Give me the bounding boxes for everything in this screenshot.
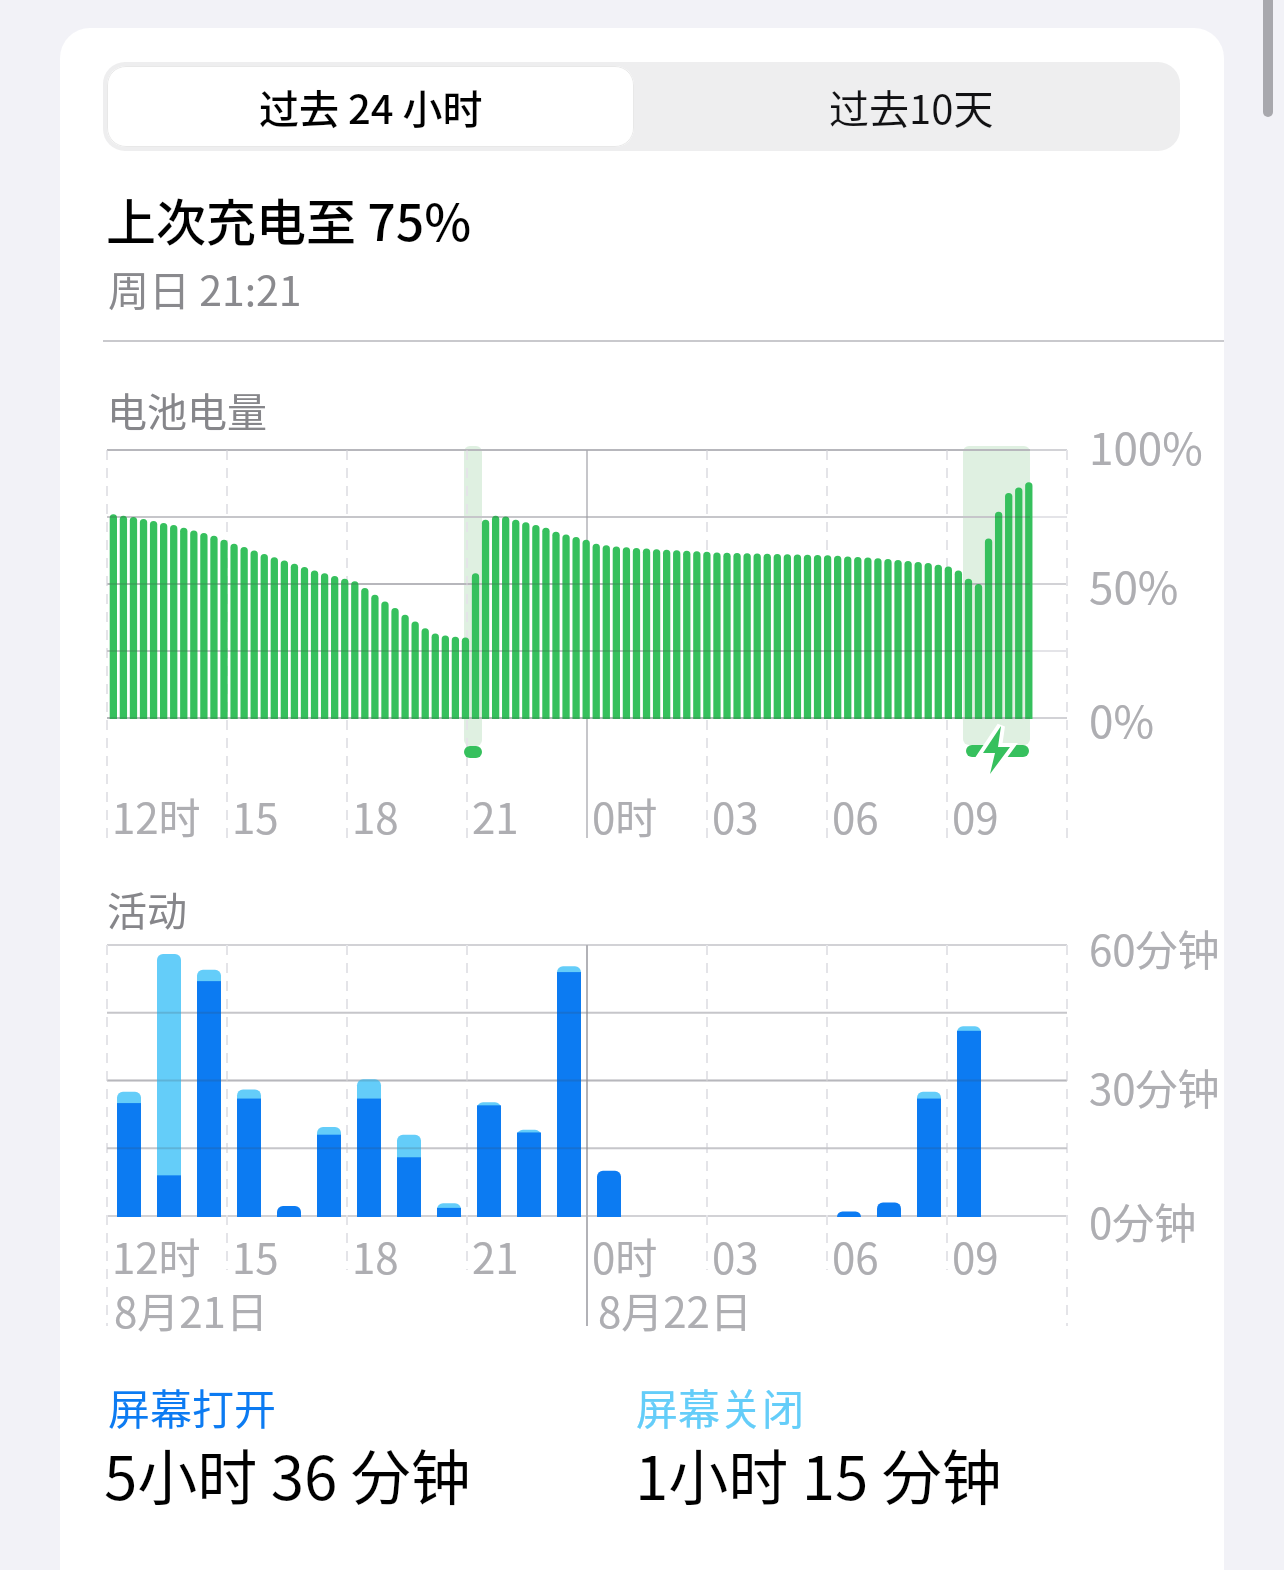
- staticText: 0%: [1089, 687, 1154, 751]
- staticText: 09: [952, 1225, 999, 1286]
- staticText: 21: [472, 785, 519, 846]
- staticText: 03: [712, 1225, 759, 1286]
- staticText: 电池电量: [107, 381, 267, 439]
- button[interactable]: 过去10天: [642, 62, 1180, 151]
- staticText: 8月22日: [598, 1279, 752, 1340]
- staticText: 0时: [592, 1225, 658, 1286]
- staticText: 06: [832, 1225, 879, 1286]
- staticText: 12时: [112, 785, 201, 846]
- staticText: 上次充电至 75%: [106, 183, 472, 255]
- staticText: 12时: [112, 1225, 201, 1286]
- staticText: 1小时 15 分钟: [635, 1430, 1002, 1517]
- staticText: 5小时 36 分钟: [104, 1430, 471, 1517]
- staticText: 0时: [592, 785, 658, 846]
- staticText: 过去 24 小时: [259, 78, 483, 136]
- staticText: 03: [712, 785, 759, 846]
- staticText: 0分钟: [1089, 1190, 1197, 1251]
- button[interactable]: 过去 24 小时: [107, 66, 634, 147]
- staticText: 06: [832, 785, 879, 846]
- staticText: 18: [352, 1225, 399, 1286]
- staticText: 15: [232, 1225, 279, 1286]
- staticText: 屏幕打开: [108, 1376, 277, 1437]
- staticText: 周日 21:21: [108, 258, 302, 317]
- staticText: 活动: [107, 880, 187, 938]
- staticText: 21: [472, 1225, 519, 1286]
- staticText: 15: [232, 785, 279, 846]
- staticText: 8月21日: [114, 1279, 268, 1340]
- staticText: 09: [952, 785, 999, 846]
- staticText: 过去10天: [829, 78, 994, 136]
- staticText: 50%: [1089, 553, 1179, 617]
- staticText: 60分钟: [1089, 917, 1220, 978]
- staticText: 屏幕关闭: [636, 1376, 805, 1437]
- staticText: 30分钟: [1089, 1056, 1220, 1117]
- staticText: 18: [352, 785, 399, 846]
- staticText: 100%: [1089, 414, 1203, 478]
